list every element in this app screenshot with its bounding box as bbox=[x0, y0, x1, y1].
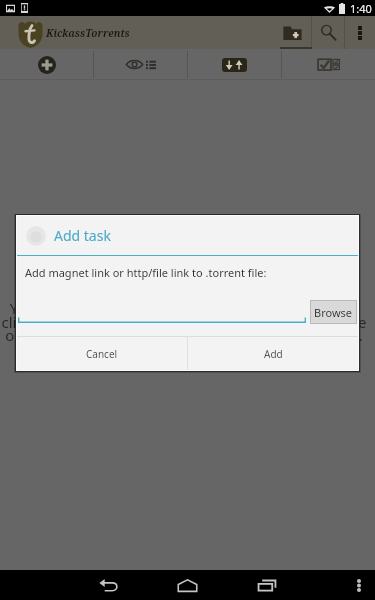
button[interactable]: Recent apps bbox=[227, 570, 306, 600]
button[interactable]: Add task bbox=[0, 49, 93, 80]
staticText: Add task bbox=[54, 226, 111, 245]
staticText: 1:40 bbox=[350, 1, 372, 16]
button[interactable]: Menu bbox=[342, 570, 375, 600]
staticText: Cancel bbox=[86, 347, 118, 361]
button[interactable]: More options bbox=[345, 16, 375, 49]
staticText: Add magnet link or http/file link to .to… bbox=[25, 265, 267, 280]
button[interactable]: Browse bbox=[311, 301, 356, 323]
staticText: KickassTorrents bbox=[46, 26, 130, 40]
staticText: Browse bbox=[314, 305, 353, 320]
staticText: Add bbox=[264, 347, 283, 361]
button[interactable]: Visible list bbox=[94, 49, 187, 80]
button[interactable]: Home bbox=[148, 570, 227, 600]
button[interactable]: Add torrent file bbox=[273, 16, 311, 49]
staticText: You have no download task in the list of… bbox=[1, 298, 367, 345]
button[interactable]: Select all bbox=[282, 49, 375, 80]
button[interactable]: Add bbox=[188, 337, 358, 370]
button[interactable]: Transfers bbox=[188, 49, 281, 80]
button[interactable]: Cancel bbox=[17, 337, 187, 370]
button[interactable]: Back bbox=[69, 570, 148, 600]
button[interactable]: Search bbox=[312, 16, 344, 49]
